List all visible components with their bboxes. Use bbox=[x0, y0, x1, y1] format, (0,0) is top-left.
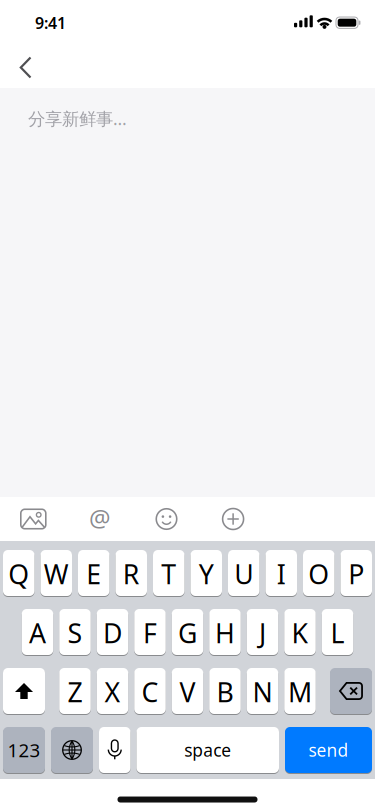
button[interactable]: G bbox=[172, 609, 203, 655]
button[interactable]: A bbox=[22, 609, 53, 655]
staticText: space bbox=[184, 738, 231, 761]
button[interactable]: F bbox=[134, 609, 166, 655]
staticText: R bbox=[123, 556, 140, 591]
button[interactable]: Y bbox=[190, 550, 222, 596]
staticText: @ bbox=[89, 502, 111, 534]
button[interactable]: Add photo bbox=[0, 497, 67, 541]
staticText: T bbox=[161, 556, 176, 591]
staticText: P bbox=[348, 556, 364, 591]
staticText: Q bbox=[8, 556, 29, 591]
button[interactable]: Delete bbox=[330, 668, 372, 714]
staticText: M bbox=[288, 674, 312, 709]
button[interactable]: E bbox=[78, 550, 109, 596]
staticText: O bbox=[308, 556, 329, 591]
staticText: send bbox=[308, 738, 348, 761]
button[interactable]: J bbox=[247, 609, 278, 655]
staticText: C bbox=[141, 674, 158, 709]
button[interactable]: T bbox=[153, 550, 184, 596]
staticText: B bbox=[216, 674, 233, 709]
button[interactable]: More bbox=[200, 497, 266, 541]
button[interactable]: X bbox=[97, 668, 128, 714]
staticText: D bbox=[103, 615, 122, 650]
staticText: Y bbox=[199, 556, 214, 591]
staticText: Z bbox=[67, 674, 82, 709]
button[interactable]: Next keyboard bbox=[51, 727, 93, 773]
staticText: L bbox=[330, 615, 344, 650]
staticText: 分享新鲜事… bbox=[28, 107, 127, 130]
button[interactable]: send bbox=[285, 727, 372, 773]
button[interactable]: L bbox=[322, 609, 353, 655]
button[interactable]: U bbox=[228, 550, 259, 596]
staticText: W bbox=[44, 556, 69, 591]
staticText: 123 bbox=[7, 738, 40, 762]
staticText: N bbox=[252, 674, 272, 709]
button[interactable]: space bbox=[136, 727, 279, 773]
button[interactable]: S bbox=[59, 609, 91, 655]
button[interactable]: O bbox=[303, 550, 334, 596]
staticText: H bbox=[215, 615, 235, 650]
staticText: J bbox=[259, 615, 266, 650]
button[interactable]: K bbox=[284, 609, 316, 655]
staticText: K bbox=[291, 615, 308, 650]
staticText: X bbox=[104, 674, 120, 709]
staticText: I bbox=[277, 556, 286, 591]
button[interactable]: Emoji bbox=[133, 497, 200, 541]
button[interactable]: Dictate bbox=[99, 727, 130, 773]
button[interactable]: Z bbox=[59, 668, 91, 714]
staticText: S bbox=[67, 615, 82, 650]
button[interactable]: M bbox=[284, 668, 316, 714]
button[interactable]: C bbox=[134, 668, 166, 714]
button[interactable]: Q bbox=[3, 550, 34, 596]
button[interactable]: D bbox=[97, 609, 128, 655]
staticText: E bbox=[86, 556, 101, 591]
button[interactable]: 123 bbox=[3, 727, 45, 773]
staticText: V bbox=[179, 674, 195, 709]
staticText: U bbox=[234, 556, 253, 591]
staticText: A bbox=[29, 615, 46, 650]
button[interactable]: B bbox=[209, 668, 241, 714]
staticText: G bbox=[178, 615, 197, 650]
button[interactable]: Shift bbox=[3, 668, 45, 714]
button[interactable]: R bbox=[115, 550, 147, 596]
button[interactable]: H bbox=[209, 609, 241, 655]
staticText: 9:41 bbox=[35, 12, 66, 33]
button[interactable]: V bbox=[172, 668, 203, 714]
button[interactable]: N bbox=[247, 668, 278, 714]
button[interactable]: I bbox=[265, 550, 297, 596]
button[interactable]: Mention bbox=[67, 497, 133, 541]
button[interactable]: P bbox=[340, 550, 372, 596]
staticText: F bbox=[143, 615, 157, 650]
button[interactable]: W bbox=[40, 550, 72, 596]
button[interactable]: Back bbox=[4, 46, 48, 90]
